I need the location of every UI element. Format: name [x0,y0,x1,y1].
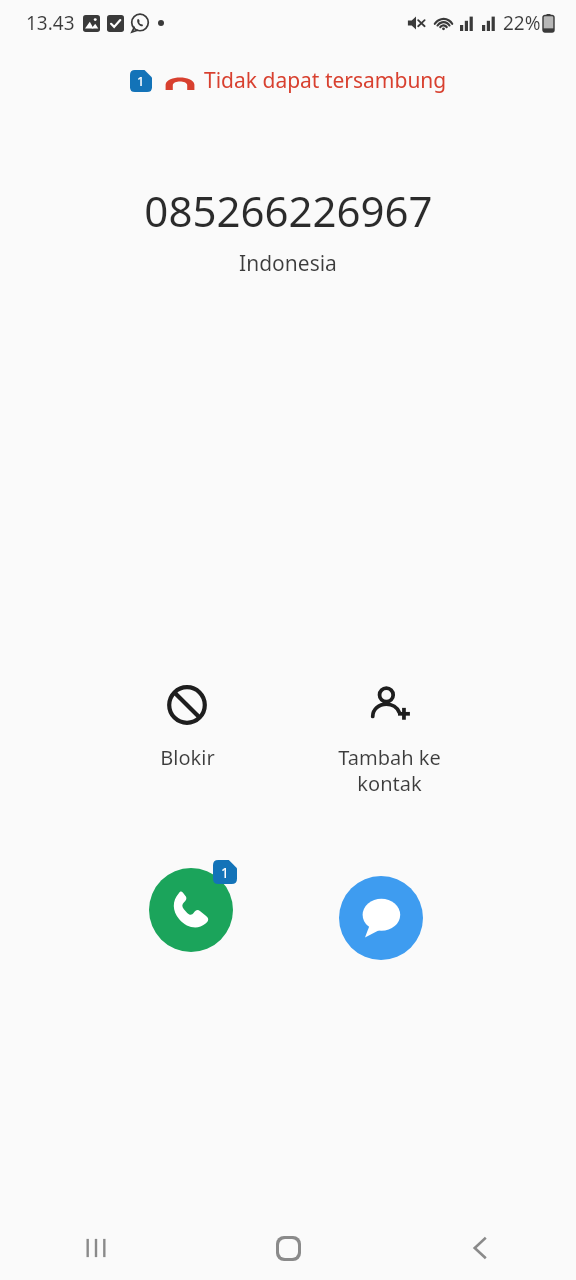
staticText: 22% [503,10,541,36]
button[interactable]: Tambah ke kontak [314,678,464,801]
button[interactable]: Back [384,1216,576,1280]
button[interactable]: Home [192,1216,384,1280]
staticText: 1 [221,863,230,882]
staticText: Tidak dapat tersambung [204,66,447,95]
staticText: 085266226967 [144,182,433,239]
button[interactable]: Pesan [329,860,433,960]
staticText: Tambah ke kontak [338,744,441,797]
staticText: Blokir [160,744,215,771]
staticText: 13.43 [26,10,75,36]
button[interactable]: Blokir [112,678,262,775]
staticText: 1 [137,72,145,90]
button[interactable]: Panggil [143,860,247,960]
button[interactable]: Recents [0,1216,192,1280]
staticText: Indonesia [239,249,337,278]
